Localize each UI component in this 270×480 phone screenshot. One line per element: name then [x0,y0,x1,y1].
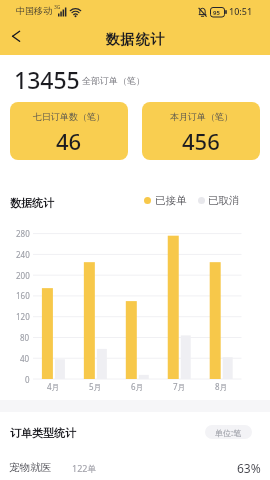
staticText: 4月 [47,381,60,392]
staticText: 240 [16,249,30,260]
staticText: 200 [16,270,30,281]
staticText: 280 [16,228,30,239]
staticText: 已取消 [208,194,240,207]
button[interactable] [6,26,30,50]
staticText: 单位:笔 [215,427,242,438]
staticText: 6月 [131,381,144,392]
staticText: 七日订单数（笔） [33,111,105,122]
staticText: 13455 [14,64,80,95]
staticText: 7月 [173,381,186,392]
staticText: 5月 [89,381,102,392]
staticText: 宠物就医 [9,461,51,474]
staticText: 63% [237,460,261,476]
staticText: 95 [213,9,220,17]
staticText: 中国移动 [16,5,52,16]
staticText: 本月订单（笔） [170,111,233,122]
staticText: 全部订单（笔） [82,75,145,86]
button[interactable]: 本月订单（笔） [142,102,260,160]
staticText: 订单类型统计 [10,426,76,440]
staticText: 120 [16,311,30,322]
staticText: 46 [56,126,82,156]
staticText: 10:51 [229,5,253,17]
staticText: 122单 [72,462,97,474]
staticText: 3G [54,4,61,11]
staticText: 已接单 [155,194,187,207]
staticText: 数据统计 [10,196,54,210]
staticText: 数据统计 [105,31,165,49]
button[interactable]: 七日订单数（笔） [10,102,128,160]
staticText: 160 [16,290,30,301]
staticText: 456 [182,126,220,156]
staticText: 0 [25,374,30,385]
button[interactable]: 宠物就医 [0,455,270,480]
staticText: 8月 [215,381,228,392]
staticText: 40 [20,353,30,364]
staticText: 80 [20,332,30,343]
